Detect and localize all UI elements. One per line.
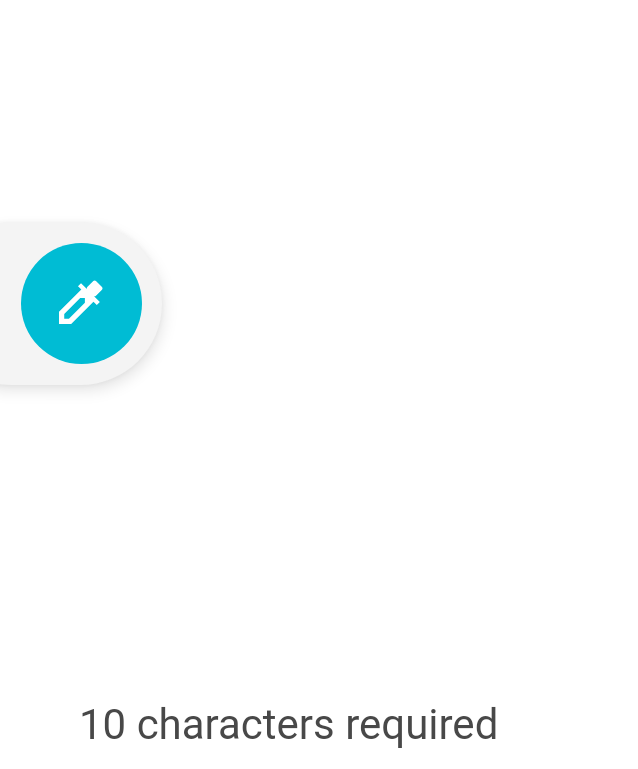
staticText: 10 characters required <box>79 700 499 749</box>
button[interactable]: Edit <box>21 243 142 364</box>
